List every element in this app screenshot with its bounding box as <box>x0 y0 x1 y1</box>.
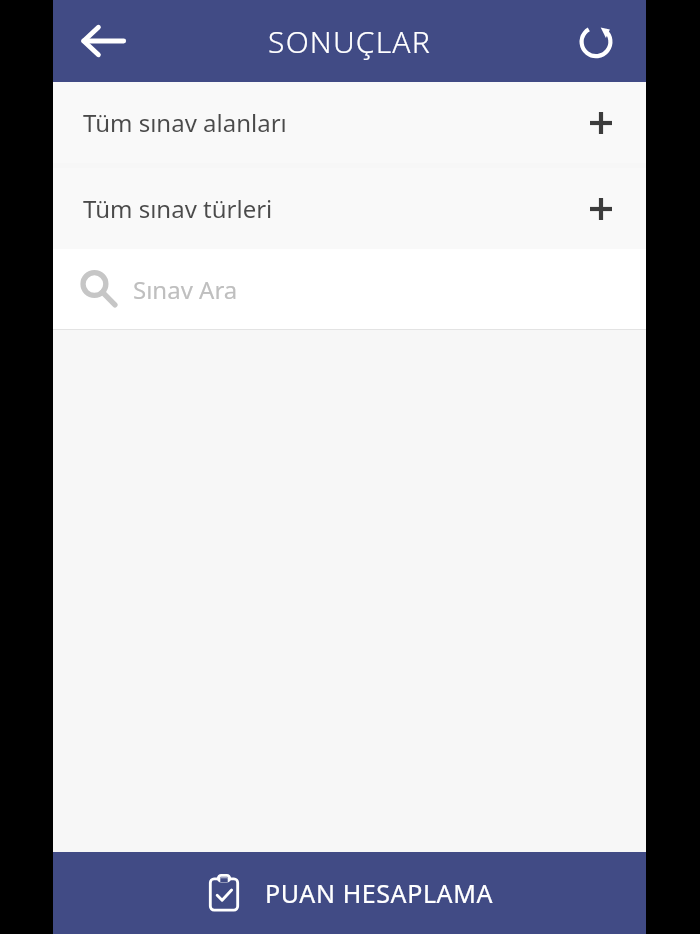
button[interactable]: PUAN HESAPLAMA <box>53 852 646 934</box>
button[interactable]: Sınav Ara <box>53 249 646 329</box>
staticText: Tüm sınav türleri <box>83 192 273 225</box>
staticText: PUAN HESAPLAMA <box>265 876 494 910</box>
staticText: Sınav Ara <box>133 273 238 306</box>
button[interactable]: Tüm sınav türleri <box>53 168 646 249</box>
staticText: SONUÇLAR <box>268 21 431 62</box>
button[interactable]: Back <box>67 5 139 77</box>
staticText: Tüm sınav alanları <box>83 106 287 139</box>
button[interactable]: Tüm sınav alanları <box>53 82 646 163</box>
button[interactable]: Refresh <box>564 9 628 73</box>
